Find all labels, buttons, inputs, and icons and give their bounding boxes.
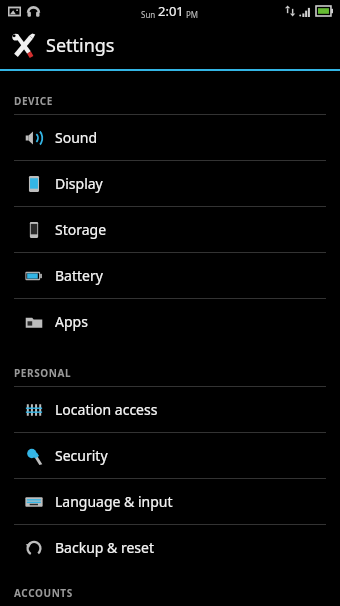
staticText: Backup & reset xyxy=(55,538,154,557)
staticText: PERSONAL xyxy=(14,366,72,380)
button[interactable]: Language & input xyxy=(0,479,340,524)
button[interactable]: Security xyxy=(0,433,340,478)
staticText: Sun xyxy=(141,9,156,20)
staticText: Security xyxy=(55,446,108,465)
button[interactable]: Backup & reset xyxy=(0,525,340,570)
staticText: 2:01 xyxy=(158,2,184,20)
staticText: ACCOUNTS xyxy=(14,586,73,600)
staticText: Storage xyxy=(55,220,107,239)
staticText: Battery xyxy=(55,266,103,285)
button[interactable]: Settings xyxy=(0,22,340,69)
staticText: Apps xyxy=(55,312,88,331)
button[interactable]: Apps xyxy=(0,299,340,344)
staticText: Location access xyxy=(55,400,158,419)
staticText: Display xyxy=(55,174,103,193)
button[interactable]: Location access xyxy=(0,387,340,432)
button[interactable]: Sound xyxy=(0,115,340,160)
staticText: Settings xyxy=(46,33,115,58)
staticText: Sound xyxy=(55,128,98,147)
button[interactable]: Display xyxy=(0,161,340,206)
staticText: DEVICE xyxy=(14,94,53,108)
staticText: PM xyxy=(186,9,199,20)
staticText: Language & input xyxy=(55,492,173,511)
button[interactable]: Battery xyxy=(0,253,340,298)
button[interactable]: Storage xyxy=(0,207,340,252)
